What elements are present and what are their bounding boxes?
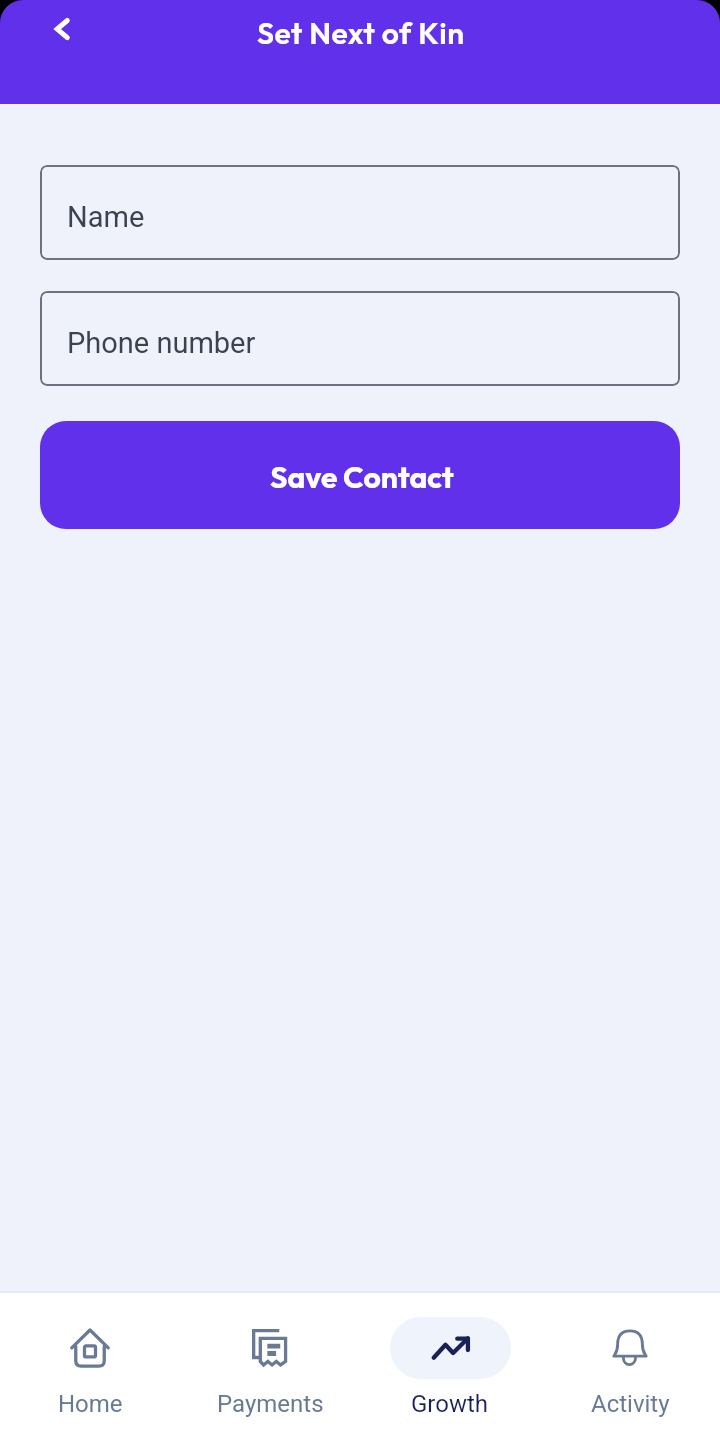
staticText: Save Contact [270, 458, 454, 496]
staticText: Home [58, 1390, 123, 1418]
button[interactable]: Phone number [40, 291, 680, 386]
button[interactable]: Activity [540, 1293, 720, 1418]
button[interactable]: Name [40, 165, 680, 260]
staticText: Name [67, 200, 145, 234]
staticText: Payments [217, 1390, 324, 1418]
staticText: Set Next of Kin [257, 14, 465, 52]
staticText: Activity [591, 1390, 670, 1418]
button[interactable]: Back [50, 15, 74, 39]
button[interactable]: Home [0, 1293, 180, 1418]
button[interactable]: Save Contact [40, 421, 680, 529]
staticText: Phone number [67, 326, 256, 360]
button[interactable]: Payments [180, 1293, 360, 1418]
staticText: Growth [411, 1390, 489, 1418]
button[interactable]: Growth [360, 1293, 540, 1418]
